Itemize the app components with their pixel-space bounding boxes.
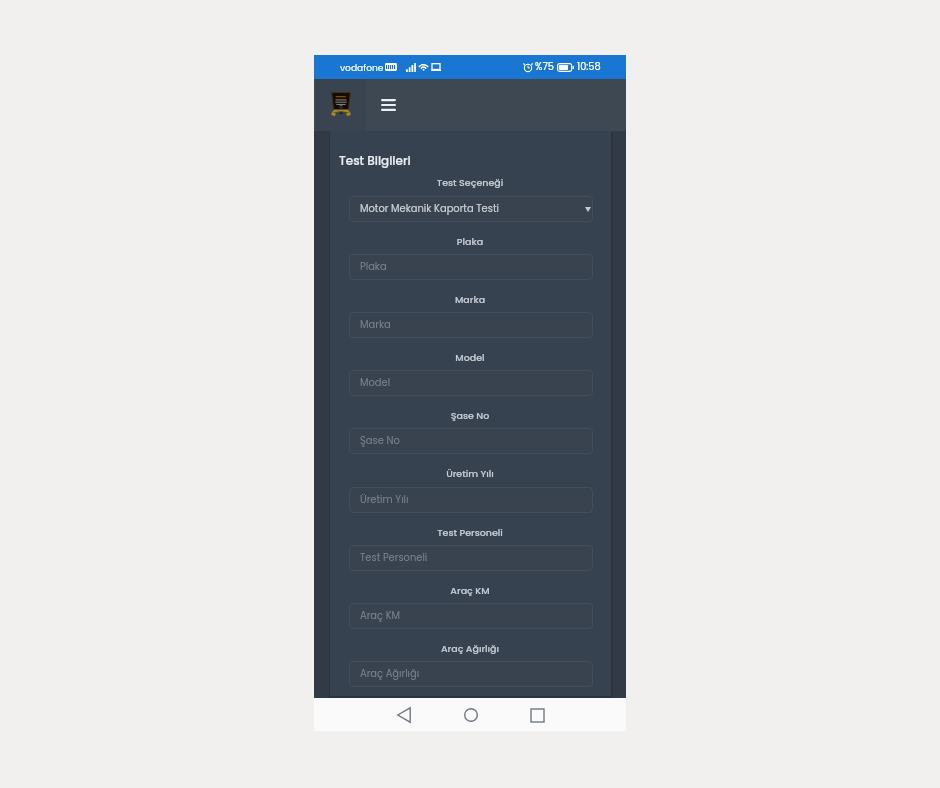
staticText: Marka: [314, 293, 626, 306]
staticText: Model: [314, 351, 626, 364]
button[interactable]: Motor Mekanik Kaporta Testi: [349, 196, 593, 222]
staticText: Model: [360, 376, 391, 390]
button[interactable]: Araç KM: [349, 603, 593, 629]
button[interactable]: Model: [349, 370, 593, 396]
button[interactable]: Üretim Yılı: [349, 487, 593, 513]
button[interactable]: Araç Ağırlığı: [349, 661, 593, 687]
button[interactable]: Marka: [349, 312, 593, 338]
staticText: Araç KM: [360, 609, 401, 623]
staticText: Test Personeli: [360, 551, 428, 565]
staticText: Üretim Yılı: [314, 467, 626, 480]
staticText: Üretim Yılı: [360, 493, 409, 507]
staticText: Araç Ağırlığı: [360, 667, 420, 681]
staticText: Plaka: [360, 260, 387, 274]
staticText: Şase No: [360, 434, 400, 448]
button[interactable]: Home logo: [315, 79, 366, 131]
staticText: Araç KM: [314, 584, 626, 597]
button[interactable]: Back: [389, 700, 419, 730]
button[interactable]: Home: [456, 700, 486, 730]
button[interactable]: Şase No: [349, 428, 593, 454]
staticText: Marka: [360, 318, 391, 332]
button[interactable]: Test Personeli: [349, 545, 593, 571]
staticText: vodafone TR: [340, 61, 420, 74]
button[interactable]: Open navigation menu: [368, 79, 408, 131]
button[interactable]: Plaka: [349, 254, 593, 280]
staticText: 10:58: [577, 60, 601, 74]
staticText: Araç Ağırlığı: [314, 642, 626, 655]
staticText: Test Bilgileri: [339, 152, 411, 169]
button[interactable]: Recent apps: [522, 700, 552, 730]
staticText: Plaka: [314, 235, 626, 248]
staticText: Test Seçeneği: [314, 176, 626, 189]
staticText: Şase No: [314, 409, 626, 422]
staticText: Motor Mekanik Kaporta Testi: [360, 202, 499, 216]
staticText: Test Personeli: [314, 526, 626, 539]
staticText: %75: [535, 60, 554, 74]
